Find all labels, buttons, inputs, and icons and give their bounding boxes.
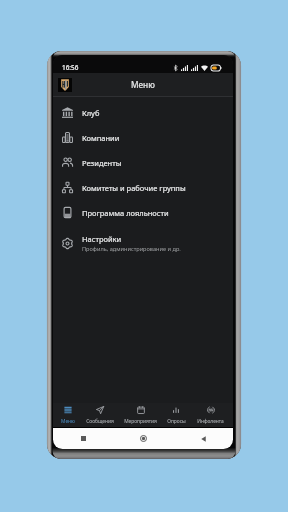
button[interactable]: Назад (173, 428, 233, 449)
button[interactable]: Домой (113, 428, 173, 449)
staticText: Меню (61, 418, 75, 425)
button[interactable]: Недавние приложения (53, 428, 113, 449)
staticText: Сообщения (86, 418, 114, 425)
button[interactable]: Инфолента (188, 403, 233, 427)
staticText: Профиль, администрирование и др. (82, 245, 181, 253)
staticText: Инфолента (197, 418, 224, 425)
staticText: 16:56 (62, 63, 79, 72)
button[interactable]: Меню (53, 403, 83, 427)
button[interactable]: Резиденты (53, 150, 233, 175)
staticText: Опросы (167, 418, 186, 425)
staticText: Программа лояльности (82, 208, 169, 218)
button[interactable]: Клуб (53, 100, 233, 125)
button[interactable]: Программа лояльности (53, 200, 233, 225)
button[interactable]: Комитеты и рабочие группы (53, 175, 233, 200)
staticText: Компании (82, 133, 120, 143)
staticText: Мероприятия (124, 418, 157, 425)
staticText: Настройки (82, 234, 122, 244)
button[interactable]: Мероприятия (117, 403, 164, 427)
button[interactable]: Сообщения (83, 403, 117, 427)
button[interactable]: Опросы (164, 403, 188, 427)
button[interactable]: Компании (53, 125, 233, 150)
button[interactable]: Настройки (53, 225, 233, 261)
staticText: Меню (131, 79, 155, 90)
staticText: Резиденты (82, 158, 122, 168)
button[interactable]: Логотип клуба (58, 78, 72, 92)
staticText: Клуб (82, 108, 100, 118)
staticText: Комитеты и рабочие группы (82, 183, 186, 193)
